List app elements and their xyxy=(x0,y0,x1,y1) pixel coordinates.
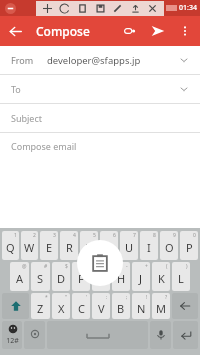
staticText: ) xyxy=(186,263,188,270)
button[interactable]: Key xyxy=(172,293,198,319)
staticText: Q xyxy=(6,240,15,255)
button[interactable]: Tool 5 xyxy=(129,2,142,15)
staticText: B xyxy=(117,301,125,316)
staticText: K xyxy=(158,271,165,286)
staticText: F xyxy=(78,271,84,286)
staticText: : xyxy=(106,294,108,301)
staticText: R xyxy=(66,240,73,255)
button[interactable]: 9 xyxy=(160,231,178,260)
staticText: To xyxy=(11,83,21,95)
staticText: I xyxy=(147,240,151,255)
button[interactable]: Paste xyxy=(77,240,123,286)
staticText: 4 xyxy=(73,232,76,239)
staticText: S xyxy=(37,271,44,286)
staticText: ' xyxy=(86,294,88,301)
button[interactable]: & xyxy=(92,262,110,291)
button[interactable]: * xyxy=(31,293,50,319)
button[interactable]: 2 xyxy=(21,231,38,260)
button[interactable]: _ xyxy=(72,262,90,291)
staticText: V xyxy=(98,301,105,316)
button[interactable]: 5 xyxy=(80,231,98,260)
button[interactable]: 7 xyxy=(120,231,138,260)
button[interactable]: 0 xyxy=(180,231,198,260)
staticText: C xyxy=(78,301,85,316)
staticText: Z xyxy=(37,301,44,316)
staticText: D xyxy=(57,271,66,286)
button[interactable]: ; xyxy=(112,293,130,319)
staticText: + xyxy=(145,263,148,270)
staticText: Compose email xyxy=(11,140,77,152)
staticText: 3 xyxy=(53,232,56,239)
staticText: L xyxy=(178,271,184,286)
staticText: H xyxy=(117,271,126,286)
button[interactable]: 1 xyxy=(2,231,19,260)
staticText: ? xyxy=(165,294,168,301)
button[interactable]: + xyxy=(132,262,150,291)
button[interactable]: $ xyxy=(52,262,70,291)
staticText: " xyxy=(65,294,68,301)
staticText: 2 xyxy=(33,232,36,239)
button[interactable]: @ xyxy=(10,262,29,291)
button[interactable]: Tool 4 xyxy=(111,2,124,15)
staticText: G xyxy=(97,271,106,286)
button[interactable]: Send xyxy=(144,17,172,45)
button[interactable]: Attach xyxy=(116,17,144,45)
staticText: - xyxy=(126,263,128,270)
button[interactable]: Key xyxy=(2,293,29,319)
staticText: W xyxy=(24,240,35,255)
staticText: E xyxy=(46,240,53,255)
staticText: 7 xyxy=(133,232,136,239)
button[interactable]: Key xyxy=(150,321,171,349)
button[interactable]: Subject xyxy=(0,104,200,132)
staticText: developer@sfapps.jp xyxy=(47,54,141,67)
staticText: 8 xyxy=(153,232,156,239)
staticText: Subject xyxy=(11,112,43,124)
button[interactable]: Space xyxy=(47,321,148,349)
button[interactable]: Key xyxy=(24,321,45,349)
button[interactable]: ' xyxy=(72,293,90,319)
staticText: * xyxy=(45,294,48,301)
staticText: & xyxy=(104,263,108,270)
button[interactable]: Tool 2 xyxy=(76,2,89,15)
staticText: U xyxy=(125,240,134,255)
button[interactable]: ) xyxy=(172,262,190,291)
staticText: @ xyxy=(22,263,27,270)
button[interactable]: 12# xyxy=(2,321,22,349)
staticText: ; xyxy=(126,294,128,301)
staticText: 01:34 xyxy=(179,3,197,13)
button[interactable]: 4 xyxy=(60,231,78,260)
staticText: Y xyxy=(106,240,113,255)
button[interactable]: Tool 3 xyxy=(94,2,107,15)
button[interactable]: From xyxy=(0,46,200,74)
button[interactable]: 3 xyxy=(40,231,58,260)
staticText: 12# xyxy=(6,336,19,346)
button[interactable]: ! xyxy=(132,293,150,319)
button[interactable]: Tool 1 xyxy=(58,2,71,15)
staticText: 6 xyxy=(113,232,116,239)
button[interactable]: Back xyxy=(0,16,30,46)
staticText: N xyxy=(137,301,146,316)
staticText: T xyxy=(86,240,93,255)
button[interactable]: Key xyxy=(173,321,198,349)
button[interactable]: 8 xyxy=(140,231,158,260)
staticText: # xyxy=(44,263,48,270)
button[interactable]: # xyxy=(31,262,50,291)
button[interactable]: : xyxy=(92,293,110,319)
staticText: From xyxy=(11,54,34,66)
button[interactable]: ( xyxy=(152,262,170,291)
staticText: ! xyxy=(146,294,148,301)
staticText: 1 xyxy=(14,232,17,239)
button[interactable]: Tool 0 xyxy=(41,2,54,15)
button[interactable]: To xyxy=(0,75,200,103)
staticText: J xyxy=(139,271,143,286)
button[interactable]: 6 xyxy=(100,231,118,260)
button[interactable]: More options xyxy=(172,18,198,44)
staticText: 0 xyxy=(193,232,196,239)
button[interactable]: - xyxy=(112,262,130,291)
button[interactable]: " xyxy=(52,293,70,319)
button[interactable]: ? xyxy=(152,293,170,319)
staticText: M xyxy=(156,301,166,316)
button[interactable]: Tool 6 xyxy=(146,2,159,15)
staticText: 9 xyxy=(173,232,176,239)
